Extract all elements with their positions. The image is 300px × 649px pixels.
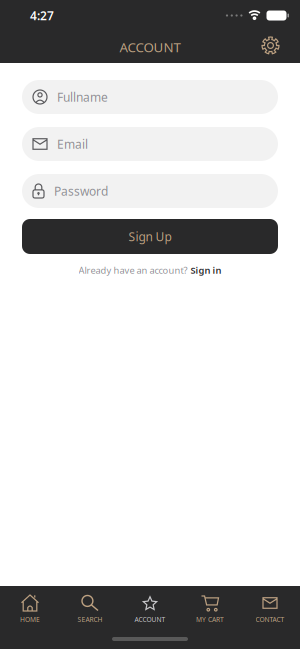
button[interactable]: Sign Up xyxy=(0,219,300,254)
staticText: ACCOUNT xyxy=(119,38,180,56)
button[interactable]: Email xyxy=(0,127,300,161)
button[interactable]: HOME xyxy=(0,595,60,624)
staticText: HOME xyxy=(20,615,40,624)
staticText: 4:27 xyxy=(30,7,54,23)
button[interactable]: ACCOUNT xyxy=(120,595,180,624)
button[interactable]: Password xyxy=(0,174,300,208)
button[interactable]: Fullname xyxy=(0,80,300,114)
button[interactable]: MY CART xyxy=(180,595,240,624)
button[interactable]: Already have an account? xyxy=(78,264,221,276)
staticText: Already have an account? xyxy=(78,264,187,276)
staticText: Fullname xyxy=(57,89,108,105)
staticText: Email xyxy=(57,136,88,152)
staticText: ACCOUNT xyxy=(134,615,165,624)
staticText: SEARCH xyxy=(77,615,102,624)
staticText: Sign Up xyxy=(128,228,171,244)
staticText: CONTACT xyxy=(255,615,284,624)
button[interactable]: CONTACT xyxy=(240,595,300,624)
staticText: Sign in xyxy=(190,264,221,276)
staticText: MY CART xyxy=(196,615,224,624)
button[interactable]: SEARCH xyxy=(60,595,120,624)
button[interactable]: Settings xyxy=(256,32,285,61)
staticText: Password xyxy=(54,183,108,199)
